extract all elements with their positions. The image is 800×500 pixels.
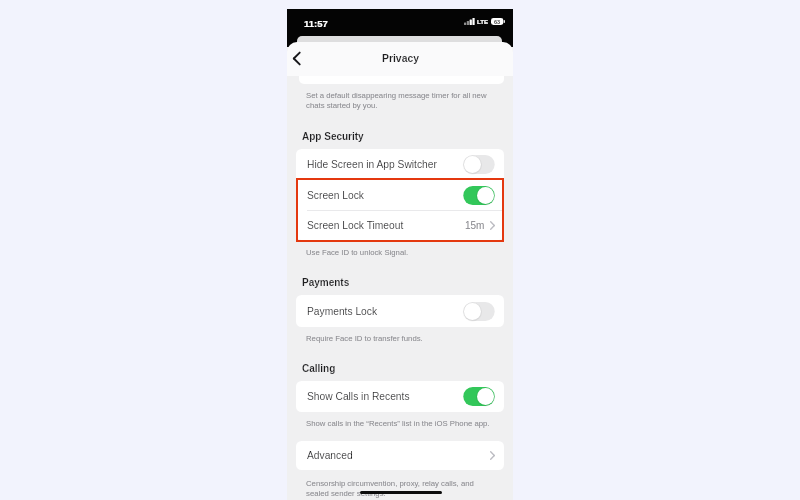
- button[interactable]: Show Calls in Recents: [296, 381, 504, 412]
- staticText: 63: [494, 19, 501, 25]
- staticText: Show Calls in Recents: [307, 391, 410, 402]
- button[interactable]: Screen Lock Timeout: [296, 211, 504, 240]
- button[interactable]: Switch on: [463, 387, 495, 406]
- staticText: Screen Lock: [307, 190, 364, 201]
- staticText: Screen Lock Timeout: [307, 220, 404, 231]
- button[interactable]: Advanced: [296, 441, 504, 470]
- staticText: Payments Lock: [307, 306, 378, 317]
- button[interactable]: Switch off: [463, 302, 495, 321]
- staticText: 15m: [465, 220, 485, 231]
- button[interactable]: Screen Lock: [296, 180, 504, 210]
- staticText: LTE: [477, 18, 489, 25]
- staticText: Use Face ID to unlock Signal.: [306, 248, 409, 257]
- button[interactable]: Payments Lock: [296, 295, 504, 327]
- button[interactable]: Back: [290, 48, 303, 69]
- staticText: Require Face ID to transfer funds.: [306, 334, 423, 343]
- staticText: 11:57: [304, 18, 328, 29]
- staticText: Advanced: [307, 450, 353, 461]
- button[interactable]: Switch on: [463, 186, 495, 205]
- staticText: Calling: [302, 363, 336, 374]
- button[interactable]: Hide Screen in App Switcher: [296, 149, 504, 179]
- button[interactable]: Switch off: [463, 155, 495, 174]
- staticText: Payments: [302, 277, 350, 288]
- staticText: App Security: [302, 131, 364, 142]
- staticText: Censorship circumvention, proxy, relay c…: [306, 479, 474, 497]
- staticText: Hide Screen in App Switcher: [307, 159, 437, 170]
- staticText: Set a default disappearing message timer…: [306, 91, 487, 109]
- staticText: Show calls in the “Recents” list in the …: [306, 419, 490, 428]
- staticText: Privacy: [382, 53, 419, 65]
